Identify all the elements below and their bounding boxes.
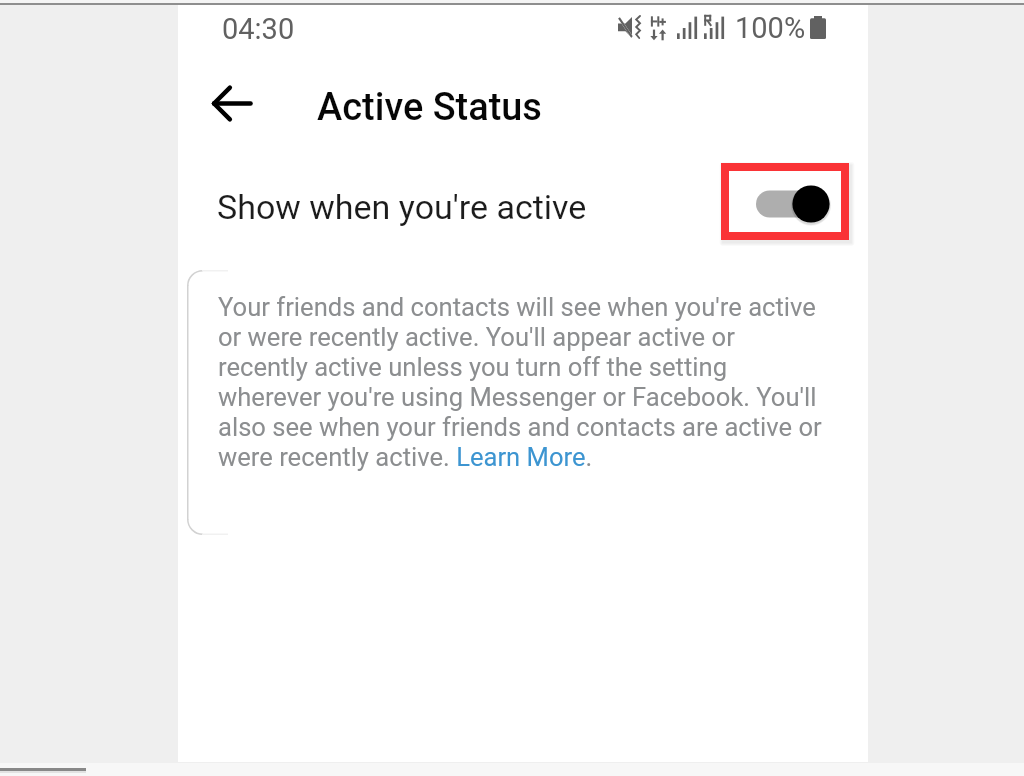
staticText: Show when you're active xyxy=(217,187,587,227)
staticText: 100% xyxy=(735,11,806,45)
staticText: 04:30 xyxy=(222,12,295,46)
staticText: Active Status xyxy=(317,85,542,129)
button[interactable]: Active status toggle xyxy=(737,182,830,226)
button[interactable]: Back xyxy=(196,72,258,134)
button[interactable]: Learn More xyxy=(455,441,588,471)
staticText: Your friends and contacts will see when … xyxy=(218,292,830,472)
button[interactable]: Show when you're active xyxy=(178,160,868,250)
